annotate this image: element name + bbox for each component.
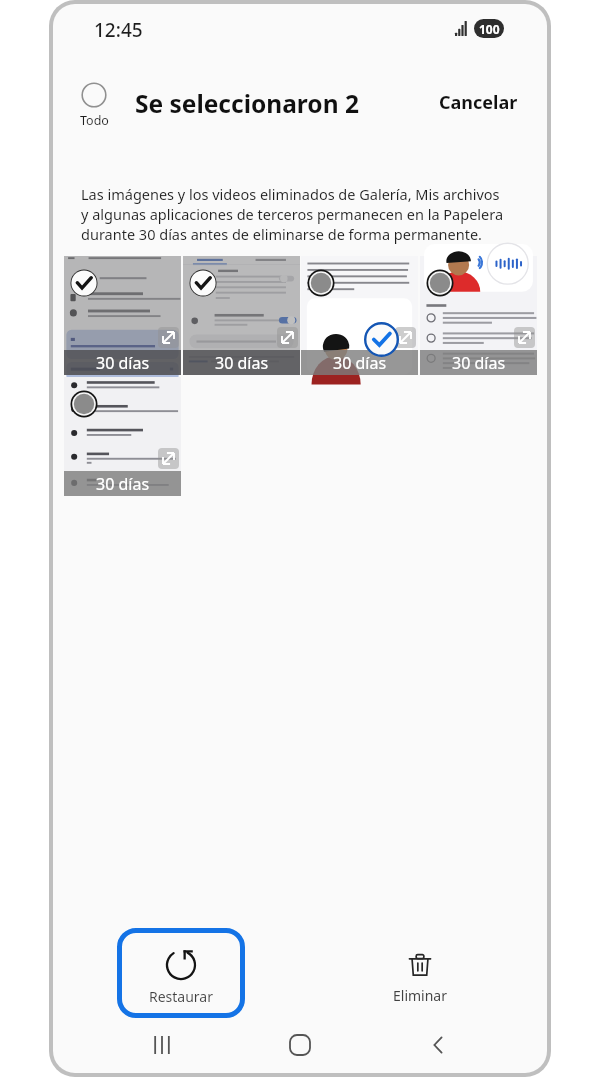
staticText: 30 días bbox=[96, 473, 150, 495]
button[interactable]: Todo bbox=[74, 82, 114, 129]
button[interactable]: Seleccionar bbox=[70, 269, 98, 297]
button[interactable]: Expandir bbox=[158, 448, 179, 469]
staticText: 30 días bbox=[96, 352, 150, 374]
button[interactable]: Inicio bbox=[276, 1021, 324, 1069]
staticText: 12:45 bbox=[94, 17, 143, 43]
staticText: Todo bbox=[80, 112, 109, 129]
button[interactable]: Seleccionar bbox=[189, 269, 217, 297]
button[interactable]: Seleccionar bbox=[70, 390, 98, 418]
staticText: Las imágenes y los videos eliminados de … bbox=[81, 184, 504, 244]
button[interactable]: Seleccionar bbox=[307, 269, 335, 297]
button[interactable]: Expandir bbox=[183, 256, 300, 375]
staticText: Cancelar bbox=[439, 90, 518, 115]
button[interactable]: Seleccionar bbox=[426, 269, 454, 297]
button[interactable]: Expandir bbox=[158, 327, 179, 348]
button[interactable]: Cancelar bbox=[427, 82, 530, 123]
button[interactable]: Recientes bbox=[138, 1021, 186, 1069]
staticText: 30 días bbox=[333, 352, 387, 374]
button[interactable]: Expandir bbox=[277, 327, 298, 348]
staticText: 30 días bbox=[452, 352, 506, 374]
button[interactable]: Expandir bbox=[514, 327, 535, 348]
staticText: Eliminar bbox=[393, 986, 447, 1005]
button[interactable]: Eliminar bbox=[375, 954, 465, 1005]
button[interactable]: Expandir bbox=[64, 377, 181, 496]
staticText: 100 bbox=[479, 21, 500, 37]
button[interactable]: Atrás bbox=[414, 1021, 462, 1069]
button[interactable]: Expandir bbox=[64, 256, 181, 375]
staticText: Restaurar bbox=[149, 987, 214, 1006]
staticText: 30 días bbox=[215, 352, 269, 374]
staticText: Se seleccionaron 2 bbox=[135, 87, 359, 120]
button[interactable]: Expandir bbox=[420, 256, 537, 375]
button[interactable]: Expandir bbox=[395, 327, 416, 348]
button[interactable]: Restaurar bbox=[117, 928, 245, 1018]
button[interactable]: Expandir bbox=[301, 256, 418, 375]
